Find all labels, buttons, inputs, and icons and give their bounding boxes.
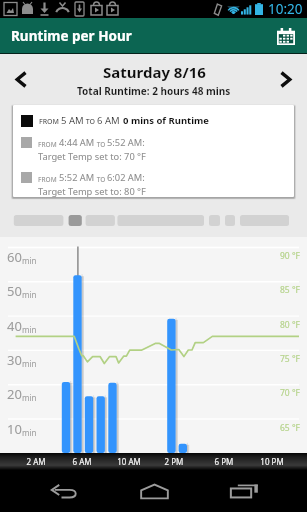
staticText: Runtime per Hour — [11, 27, 132, 45]
staticText: 5 AM — [61, 114, 84, 127]
staticText: 50 — [7, 282, 22, 300]
staticText: 10:20 — [268, 0, 303, 18]
staticText: TO — [95, 140, 107, 149]
staticText: 75 °F — [280, 353, 300, 365]
staticText: Saturday 8/16 — [103, 62, 206, 82]
staticText: 10 AM — [104, 456, 154, 467]
staticText: 4:44 AM — [59, 136, 95, 149]
staticText: min — [22, 324, 37, 335]
staticText: Total Runtime: 2 hours 48 mins — [77, 84, 231, 98]
staticText: min — [22, 392, 37, 403]
staticText: FROM — [38, 140, 59, 149]
staticText: 85 °F — [280, 284, 300, 296]
button[interactable]: Calendar — [265, 18, 307, 54]
staticText: 6 PM — [199, 456, 249, 467]
staticText: min — [22, 427, 37, 438]
staticText: 10 PM — [247, 456, 297, 467]
staticText: 90 °F — [280, 250, 300, 262]
staticText: Target Temp set to: 70 °F — [38, 150, 146, 163]
staticText: TO — [84, 117, 97, 127]
staticText: 60 — [7, 248, 22, 266]
staticText: min — [22, 358, 37, 369]
staticText: FROM — [39, 117, 61, 127]
button[interactable] — [0, 215, 307, 226]
button[interactable]: 60 — [0, 237, 307, 453]
staticText: 10 — [7, 420, 22, 438]
staticText: 5:52 AM — [59, 171, 95, 184]
staticText: 2 PM — [149, 456, 199, 467]
staticText: Target Temp set to: 80 °F — [38, 185, 146, 197]
button[interactable]: Next day — [265, 54, 307, 105]
staticText: min — [22, 289, 37, 300]
staticText: 6 AM — [57, 456, 107, 467]
button[interactable]: Back — [30, 470, 98, 512]
staticText: 80 °F — [280, 319, 300, 331]
button[interactable]: Recents — [210, 470, 278, 512]
staticText: FROM — [38, 175, 59, 184]
staticText: 6:02 AM: — [107, 171, 145, 184]
staticText: 30 — [7, 351, 22, 369]
staticText: 65 °F — [280, 422, 300, 434]
button[interactable]: Home — [120, 470, 188, 512]
staticText: 40 — [7, 317, 22, 335]
staticText: 20 — [7, 385, 22, 403]
staticText: 70 °F — [280, 387, 300, 399]
staticText: TO — [95, 175, 107, 184]
staticText: 2 AM — [11, 456, 61, 467]
staticText: 0 mins of Runtime — [123, 114, 209, 127]
button[interactable]: FROM — [13, 105, 294, 197]
button[interactable]: Previous day — [0, 54, 42, 105]
staticText: min — [22, 255, 37, 266]
staticText: 6 AM — [97, 114, 123, 127]
staticText: 5:52 AM: — [107, 136, 145, 149]
